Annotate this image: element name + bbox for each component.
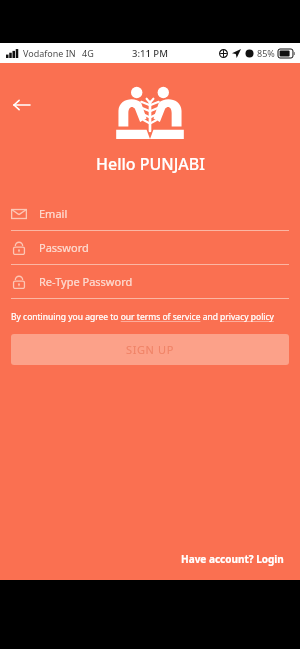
staticText: Vodafone IN [23,47,76,59]
button[interactable]: Re-Type Password [11,265,289,299]
staticText: Password [39,240,89,255]
button[interactable]: Have account? Login [177,548,288,570]
staticText: 85% [257,47,275,59]
staticText: Re-Type Password [39,274,133,289]
button[interactable]: Back [8,91,36,119]
staticText: SIGN UP [126,342,174,357]
button[interactable]: Email [11,197,289,231]
button[interactable]: SIGN UP [11,334,289,365]
staticText: 4G [82,47,94,59]
staticText: By continuing you agree to our terms of … [11,311,274,323]
button[interactable]: Password [11,231,289,265]
staticText: Email [39,206,68,221]
staticText: 3:11 PM [132,47,168,60]
staticText: Have account? Login [181,552,284,566]
staticText: Hello PUNJABI [96,153,205,175]
